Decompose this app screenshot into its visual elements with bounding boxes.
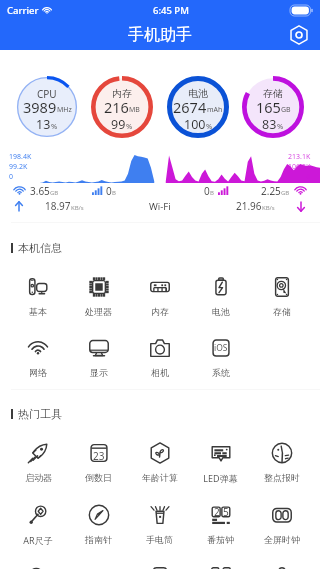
staticText: 18.97 <box>45 199 71 213</box>
staticText: 6:45 PM <box>153 4 189 17</box>
button[interactable]: 二维码 <box>190 566 251 569</box>
staticText: B <box>210 189 214 197</box>
staticText: CPU <box>37 87 57 101</box>
staticText: 198.4K <box>9 152 32 162</box>
staticText: 基本 <box>29 306 47 317</box>
button[interactable]: 手电筒 <box>129 504 190 545</box>
staticText: 存储 <box>273 306 291 317</box>
staticText: LED弹幕 <box>203 472 238 484</box>
button[interactable]: 电池 <box>190 276 251 317</box>
staticText: 电池 <box>212 306 230 317</box>
staticText: 处理器 <box>85 306 112 317</box>
staticText: 23 <box>93 449 105 463</box>
staticText: 0 <box>9 172 14 182</box>
staticText: 213.1K <box>288 152 311 162</box>
staticText: 番茄钟 <box>207 534 234 545</box>
button[interactable]: 启动器 <box>8 442 68 483</box>
staticText: iOS <box>214 342 228 354</box>
staticText: 本机信息 <box>18 241 62 255</box>
staticText: % <box>51 121 58 131</box>
staticText: 83 <box>262 116 277 133</box>
staticText: % <box>126 121 133 131</box>
staticText: Wi-Fi <box>149 200 171 213</box>
staticText: 年龄计算 <box>142 472 178 483</box>
button[interactable]: 电池 <box>167 76 229 138</box>
staticText: % <box>277 121 284 131</box>
staticText: KB/s <box>71 204 84 212</box>
staticText: 内存 <box>151 306 169 317</box>
staticText: MHz <box>57 105 72 115</box>
staticText: 0 <box>204 184 210 198</box>
staticText: GB <box>50 189 59 197</box>
button[interactable]: iOS <box>190 337 251 378</box>
button[interactable]: 内存 <box>129 276 190 317</box>
staticText: 系统 <box>212 367 230 378</box>
staticText: 3989 <box>23 97 57 117</box>
button[interactable]: CPU <box>16 76 78 138</box>
button[interactable]: 基本 <box>8 276 68 317</box>
button[interactable]: 2 <box>190 504 251 545</box>
button[interactable]: 年龄计算 <box>129 442 190 483</box>
button[interactable]: 处理器 <box>68 276 129 317</box>
staticText: 216 <box>104 97 129 117</box>
button[interactable]: 放大镜 <box>8 566 68 569</box>
button[interactable]: 全屏时钟 <box>251 504 312 545</box>
staticText: GB <box>281 105 291 115</box>
staticText: 指南针 <box>85 534 112 545</box>
button[interactable]: 内存 <box>91 76 153 138</box>
button[interactable]: 23 <box>68 442 129 483</box>
staticText: GB <box>281 189 290 197</box>
staticText: 倒数日 <box>85 472 112 483</box>
staticText: 内存 <box>112 87 132 100</box>
button[interactable]: 计算器 <box>129 566 190 569</box>
staticText: 21.96 <box>236 199 262 213</box>
staticText: KB/s <box>262 204 275 212</box>
staticText: 全屏时钟 <box>264 534 300 545</box>
button[interactable]: 整点报时 <box>251 442 312 483</box>
staticText: 2674 <box>173 97 207 117</box>
staticText: 电池 <box>188 87 208 100</box>
staticText: 165 <box>256 97 281 117</box>
staticText: 2.25 <box>261 184 281 198</box>
staticText: 0 <box>106 184 112 198</box>
staticText: 存储 <box>263 87 283 100</box>
button[interactable]: 录音机 <box>251 566 312 569</box>
staticText: AR尺子 <box>23 534 53 546</box>
staticText: 13 <box>36 116 51 133</box>
button[interactable]: 显示 <box>68 337 129 378</box>
staticText: 显示 <box>90 367 108 378</box>
button[interactable]: 指南针 <box>68 504 129 545</box>
staticText: 网络 <box>29 367 47 378</box>
button[interactable]: AR尺子 <box>8 504 68 546</box>
button[interactable]: 网络 <box>8 337 68 378</box>
button[interactable]: 相机 <box>129 337 190 378</box>
staticText: 100 <box>184 116 206 133</box>
staticText: 整点报时 <box>264 472 300 483</box>
staticText: 热门工具 <box>18 407 62 421</box>
staticText: 手机助手 <box>128 25 192 45</box>
button[interactable]: 存储 <box>251 276 312 317</box>
staticText: 3.65 <box>30 184 50 198</box>
staticText: % <box>206 121 213 131</box>
staticText: 5 <box>223 505 229 519</box>
staticText: 99.2K <box>9 162 28 172</box>
button[interactable]: 存储 <box>242 76 304 138</box>
staticText: 99 <box>111 116 126 133</box>
staticText: mAh <box>207 105 223 115</box>
staticText: MB <box>129 105 140 115</box>
staticText: 106.5K <box>288 162 311 172</box>
staticText: 2 <box>214 505 220 519</box>
button[interactable]: Settings <box>287 23 311 47</box>
staticText: B <box>112 189 116 197</box>
staticText: Carrier <box>7 4 39 17</box>
staticText: 手电筒 <box>146 534 173 545</box>
staticText: 启动器 <box>25 472 52 483</box>
staticText: 相机 <box>151 367 169 378</box>
button[interactable]: LED弹幕 <box>190 442 251 484</box>
